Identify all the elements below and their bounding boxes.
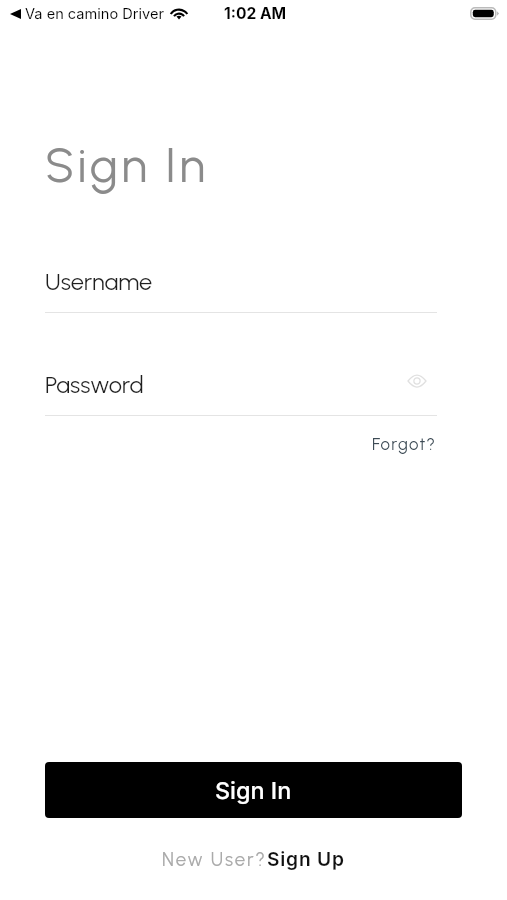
button[interactable]: Sign Up	[267, 847, 345, 870]
staticText: 1:02 AM	[224, 4, 287, 23]
button[interactable]: Show password	[400, 371, 434, 390]
staticText: Va en camino Driver	[25, 5, 165, 23]
staticText: Sign In	[215, 776, 292, 804]
other: Back to Va en camino Driver	[10, 9, 21, 19]
staticText: Password	[45, 371, 144, 399]
staticText: Username	[45, 268, 153, 296]
staticText: New User?	[162, 848, 267, 870]
button[interactable]: Forgot?	[372, 432, 437, 456]
staticText: Sign In	[45, 136, 209, 194]
button[interactable]: Sign In	[45, 762, 462, 818]
